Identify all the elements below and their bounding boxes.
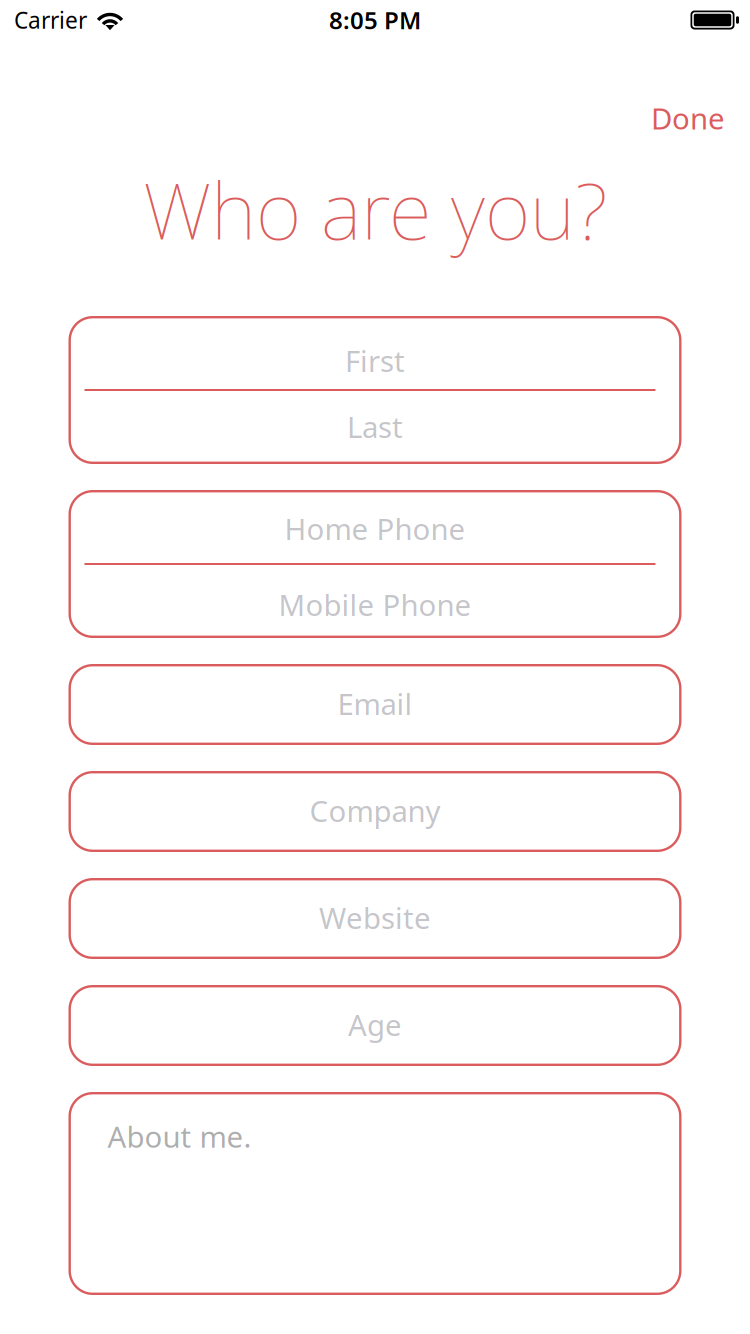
button[interactable]: Age — [68, 985, 681, 1066]
staticText: Website — [319, 898, 431, 937]
button[interactable]: Home Phone — [68, 490, 681, 563]
staticText: Done — [651, 98, 725, 137]
button[interactable]: About me. — [68, 1092, 681, 1295]
button[interactable]: First — [68, 316, 681, 389]
button[interactable]: Website — [68, 878, 681, 959]
button[interactable]: Done — [638, 92, 738, 144]
staticText: Who are you? — [143, 157, 607, 261]
staticText: Mobile Phone — [278, 585, 471, 624]
staticText: Carrier — [14, 5, 87, 35]
staticText: First — [345, 341, 405, 380]
button[interactable]: Mobile Phone — [68, 565, 681, 638]
staticText: About me. — [107, 1117, 251, 1156]
staticText: Email — [337, 684, 412, 723]
button[interactable]: Last — [68, 391, 681, 464]
staticText: Company — [309, 791, 440, 830]
staticText: Last — [347, 407, 403, 446]
button[interactable]: Email — [68, 664, 681, 745]
button[interactable]: Company — [68, 771, 681, 852]
staticText: 8:05 PM — [329, 4, 421, 36]
staticText: Age — [348, 1005, 402, 1044]
staticText: Home Phone — [284, 509, 465, 548]
